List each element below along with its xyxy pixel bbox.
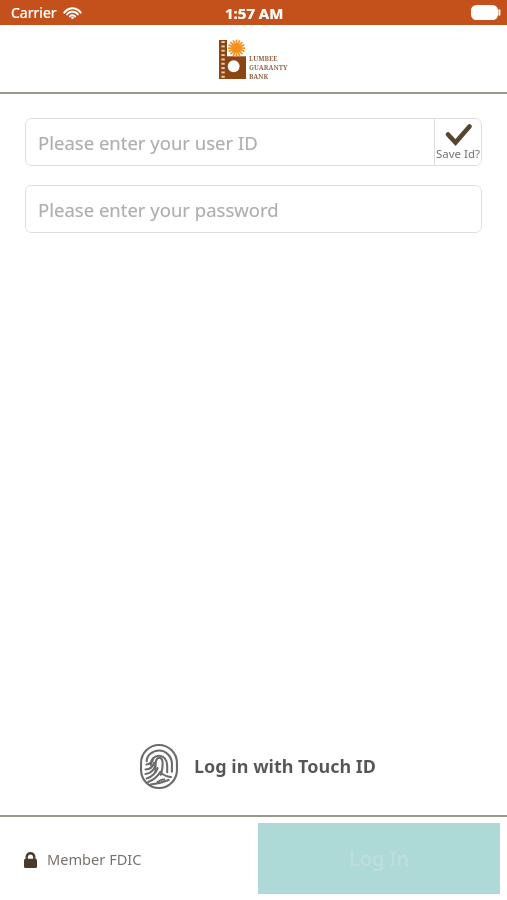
staticText: Carrier: [11, 3, 57, 22]
staticText: Log In: [349, 845, 410, 872]
staticText: LUMBEE: [249, 54, 278, 63]
staticText: 1:57 AM: [225, 3, 284, 23]
staticText: GUARANTY: [249, 63, 288, 72]
button[interactable]: Member FDIC: [24, 849, 142, 869]
staticText: BANK: [249, 72, 269, 81]
staticText: Log in with Touch ID: [194, 754, 377, 779]
staticText: Member FDIC: [47, 849, 142, 869]
staticText: Please enter your user ID: [38, 130, 434, 155]
button[interactable]: Please enter your password: [25, 185, 482, 233]
staticText: Save Id?: [436, 146, 481, 162]
button[interactable]: Save Id: [435, 118, 482, 166]
staticText: Please enter your password: [38, 197, 279, 222]
button[interactable]: Please enter your user ID: [25, 118, 482, 166]
button[interactable]: Log in with Touch ID: [0, 744, 507, 789]
